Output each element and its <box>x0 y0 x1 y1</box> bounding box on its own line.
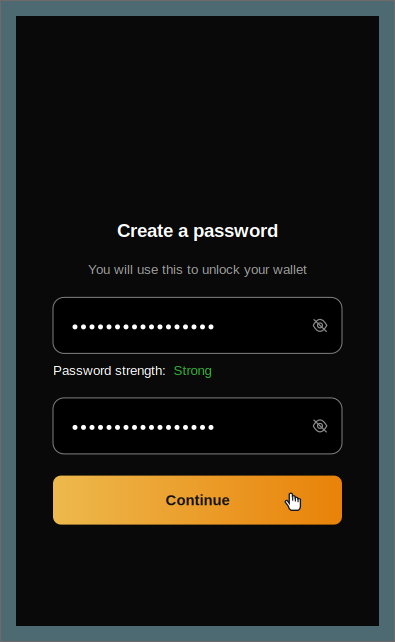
staticText: Password strength: <box>53 363 166 378</box>
staticText: Continue <box>165 492 229 508</box>
staticText: You will use this to unlock your wallet <box>88 262 307 277</box>
button[interactable]: Continue <box>53 476 342 525</box>
staticText: Create a password <box>117 220 278 241</box>
button[interactable]: Show password <box>305 308 335 342</box>
staticText: Strong <box>173 363 211 378</box>
button[interactable]: Show password <box>305 409 335 443</box>
